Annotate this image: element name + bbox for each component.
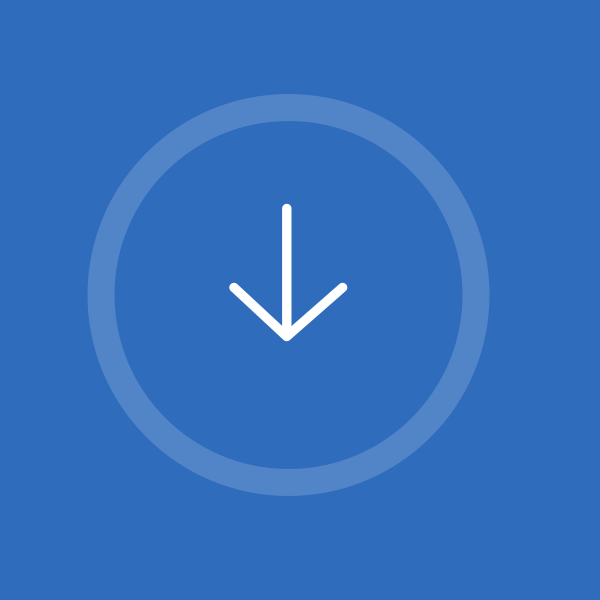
button[interactable]: Scroll to bottom	[87, 94, 489, 496]
